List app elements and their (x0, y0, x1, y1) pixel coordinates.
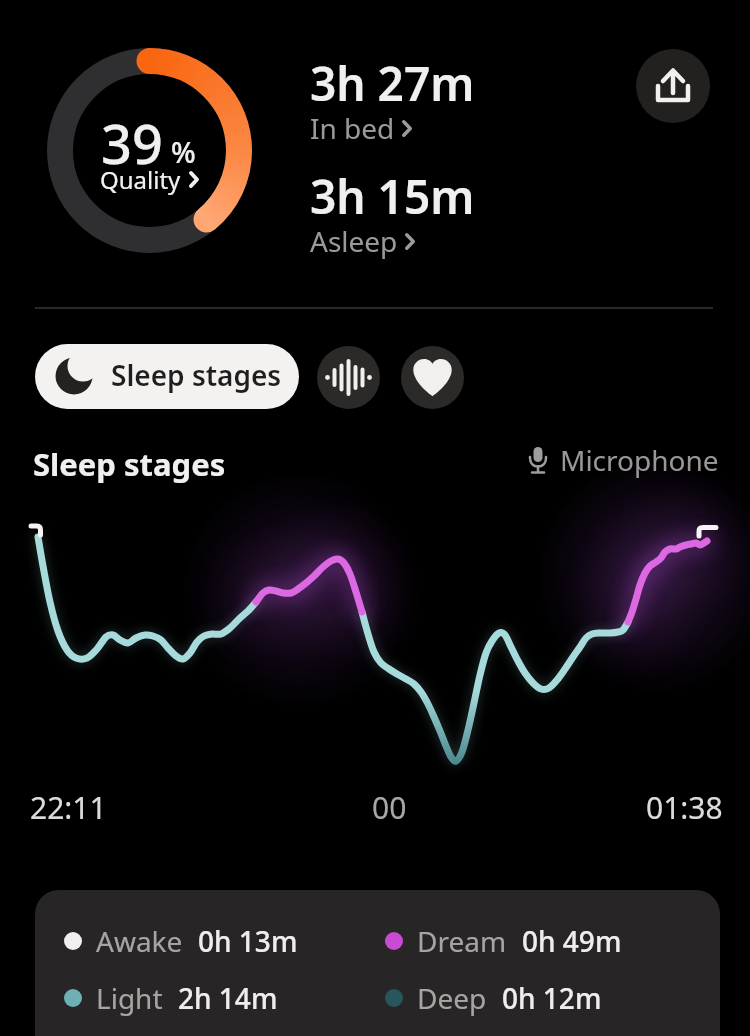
staticText: 01:38 (646, 787, 723, 828)
staticText: 2h 14m (178, 979, 278, 1017)
staticText: 0h 12m (502, 979, 602, 1017)
staticText: % (171, 132, 196, 171)
button[interactable]: 39 (47, 48, 252, 253)
staticText: Asleep (310, 222, 398, 260)
button[interactable]: Asleep (310, 222, 415, 260)
staticText: 39 (101, 106, 163, 180)
staticText: 3h 27m (310, 52, 475, 115)
staticText: Sleep stages (33, 443, 226, 485)
staticText: Microphone (560, 441, 719, 479)
button[interactable] (401, 346, 464, 409)
staticText: Deep (417, 979, 487, 1017)
staticText: Sleep stages (111, 356, 282, 394)
button[interactable]: Sleep stages (35, 344, 299, 409)
button[interactable] (636, 49, 710, 123)
staticText: 00 (372, 787, 407, 828)
staticText: 0h 13m (198, 922, 298, 960)
staticText: In bed (310, 109, 395, 147)
button[interactable]: Microphone (528, 441, 719, 479)
staticText: Awake (96, 922, 183, 960)
staticText: Light (96, 979, 163, 1017)
staticText: Quality (100, 163, 181, 196)
staticText: 0h 49m (522, 922, 622, 960)
staticText: 22:11 (30, 787, 107, 828)
staticText: 3h 15m (310, 165, 475, 228)
button[interactable]: In bed (310, 109, 412, 147)
staticText: Dream (417, 922, 507, 960)
button[interactable] (317, 346, 380, 409)
